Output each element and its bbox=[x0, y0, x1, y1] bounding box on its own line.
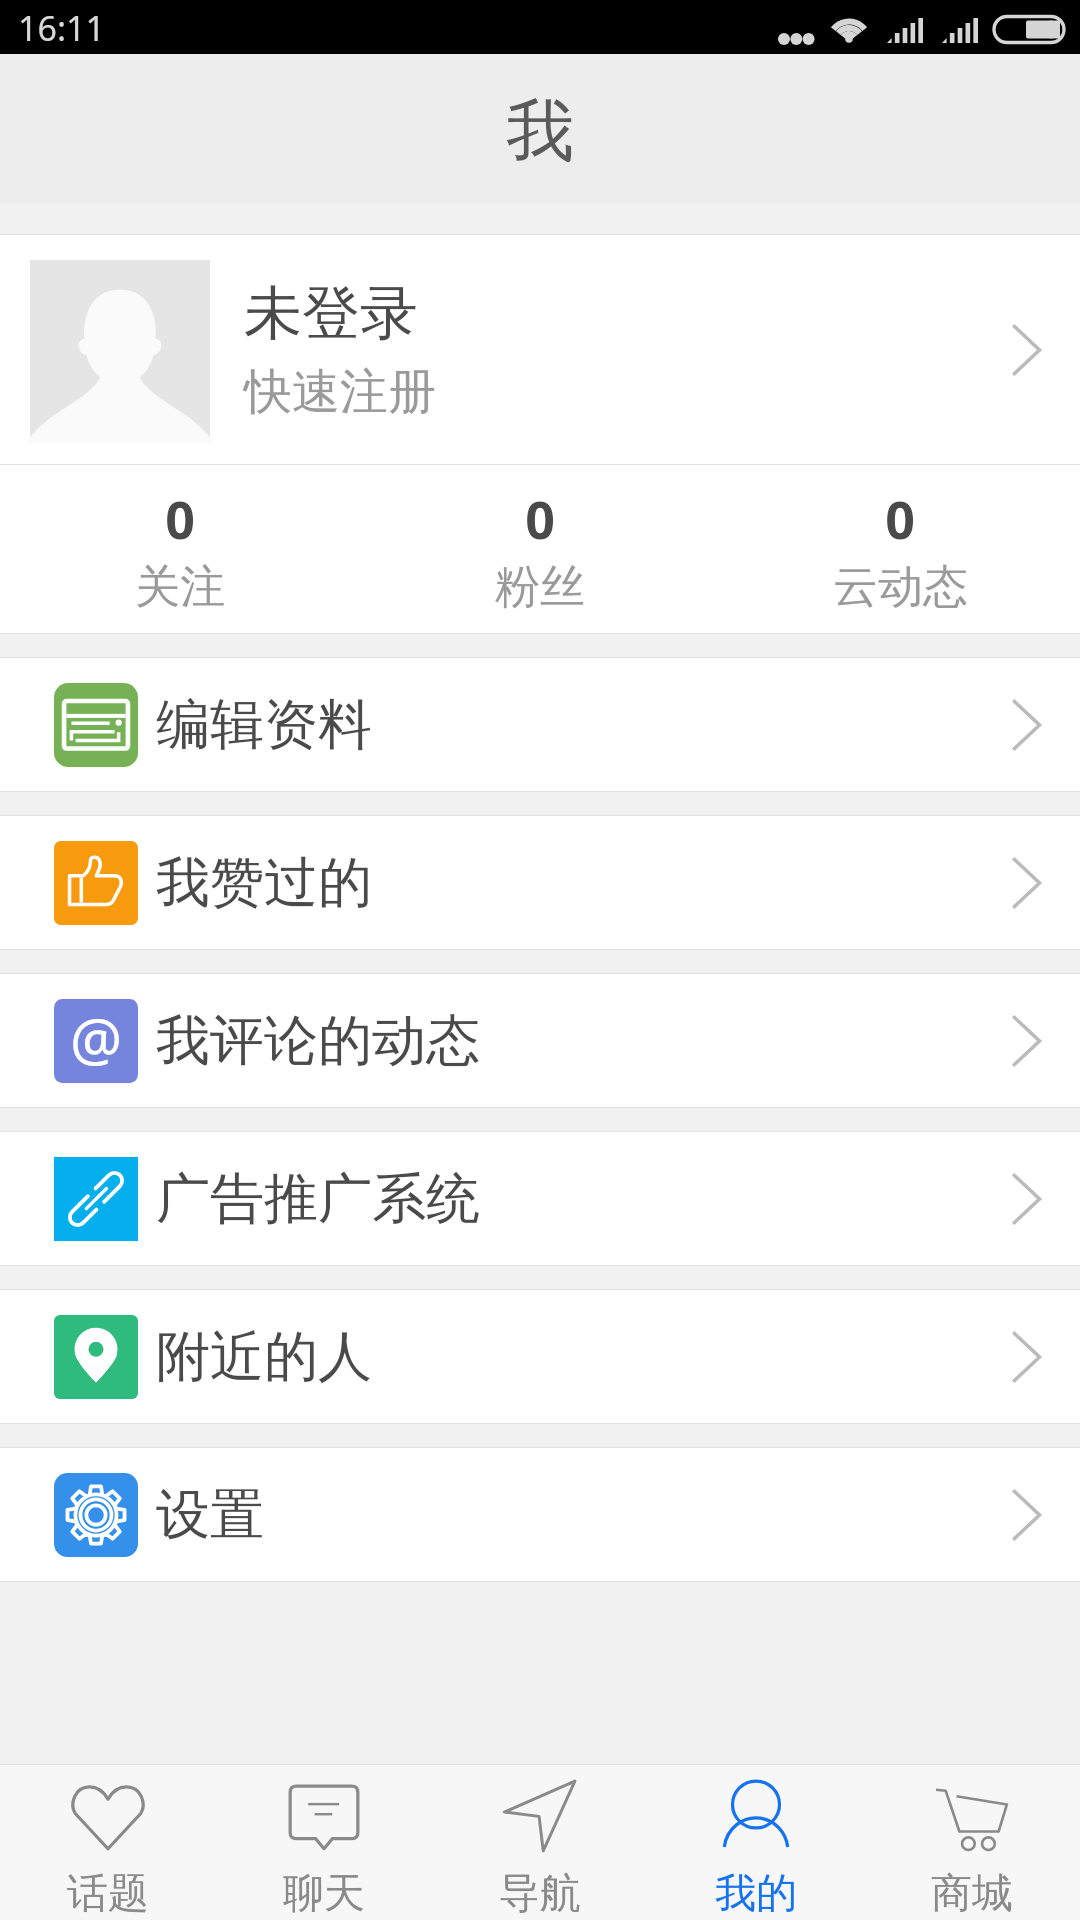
staticText: 导航 bbox=[499, 1868, 581, 1920]
button[interactable]: 我的 bbox=[648, 1765, 864, 1920]
staticText: 关注 bbox=[135, 559, 225, 616]
button[interactable]: 我赞过的 bbox=[0, 816, 1080, 949]
staticText: 16:11 bbox=[18, 5, 105, 51]
staticText: 附近的人 bbox=[156, 1323, 372, 1391]
staticText: 我评论的动态 bbox=[156, 1007, 480, 1075]
button[interactable]: 聊天 bbox=[216, 1765, 432, 1920]
staticText: 编辑资料 bbox=[156, 691, 372, 759]
staticText: 商城 bbox=[931, 1868, 1013, 1920]
staticText: 广告推广系统 bbox=[156, 1165, 480, 1233]
staticText: 话题 bbox=[67, 1868, 149, 1920]
staticText: 快速注册 bbox=[244, 362, 436, 422]
staticText: 未登录 bbox=[244, 277, 418, 350]
button[interactable]: 商城 bbox=[864, 1765, 1080, 1920]
button[interactable]: 广告推广系统 bbox=[0, 1132, 1080, 1265]
staticText: 我 bbox=[506, 89, 574, 175]
staticText: 0 bbox=[525, 483, 555, 554]
staticText: 云动态 bbox=[833, 559, 968, 616]
staticText: 设置 bbox=[156, 1481, 264, 1549]
staticText: 我的 bbox=[715, 1868, 797, 1920]
staticText: 粉丝 bbox=[495, 559, 585, 616]
button[interactable]: 附近的人 bbox=[0, 1290, 1080, 1423]
staticText: 0 bbox=[885, 483, 915, 554]
button[interactable]: 0 bbox=[720, 465, 1080, 633]
button[interactable]: 未登录 bbox=[0, 235, 1080, 464]
button[interactable]: 0 bbox=[360, 465, 720, 633]
button[interactable]: 话题 bbox=[0, 1765, 216, 1920]
staticText: 聊天 bbox=[283, 1868, 365, 1920]
staticText: 我赞过的 bbox=[156, 849, 372, 917]
staticText: 0 bbox=[165, 483, 195, 554]
button[interactable]: 设置 bbox=[0, 1448, 1080, 1581]
button[interactable]: 导航 bbox=[432, 1765, 648, 1920]
button[interactable]: 编辑资料 bbox=[0, 658, 1080, 791]
button[interactable]: 0 bbox=[0, 465, 360, 633]
button[interactable]: @ bbox=[0, 974, 1080, 1107]
staticText: @ bbox=[70, 999, 123, 1071]
